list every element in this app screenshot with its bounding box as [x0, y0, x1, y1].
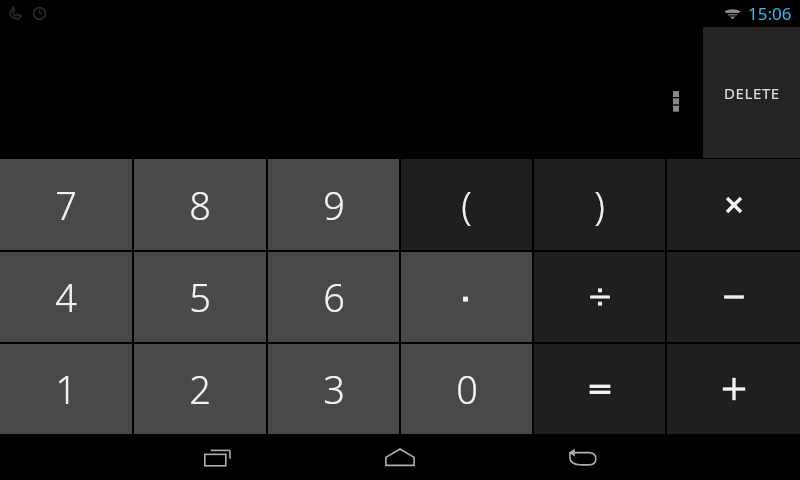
button[interactable]: 4: [0, 252, 132, 342]
staticText: 15:06: [748, 2, 792, 25]
button[interactable]: Home: [369, 435, 431, 479]
staticText: 5: [189, 271, 211, 323]
button[interactable]: Multiply: [667, 159, 800, 250]
button[interactable]: 1: [0, 344, 132, 434]
staticText: DELETE: [724, 83, 780, 103]
button[interactable]: 0: [401, 344, 532, 434]
button[interactable]: DELETE: [703, 27, 800, 158]
button[interactable]: (: [401, 159, 532, 250]
staticText: 9: [323, 179, 345, 231]
button[interactable]: 8: [134, 159, 266, 250]
button[interactable]: Equals: [534, 344, 665, 434]
button[interactable]: 9: [268, 159, 399, 250]
staticText: (: [461, 179, 472, 231]
staticText: 6: [323, 271, 345, 323]
staticText: 7: [55, 179, 77, 231]
button[interactable]: Back: [551, 435, 613, 479]
staticText: ): [594, 179, 605, 231]
button[interactable]: More options: [660, 78, 692, 126]
staticText: 4: [55, 271, 77, 323]
button[interactable]: Decimal point: [401, 252, 532, 342]
staticText: 8: [189, 179, 211, 231]
button[interactable]: 6: [268, 252, 399, 342]
button[interactable]: ): [534, 159, 665, 250]
button[interactable]: 3: [268, 344, 399, 434]
button[interactable]: Plus: [667, 344, 800, 434]
button[interactable]: 2: [134, 344, 266, 434]
staticText: 0: [456, 363, 478, 415]
staticText: 2: [189, 363, 211, 415]
button[interactable]: Divide: [534, 252, 665, 342]
staticText: 3: [323, 363, 345, 415]
button[interactable]: Minus: [667, 252, 800, 342]
button[interactable]: 5: [134, 252, 266, 342]
button[interactable]: Recent apps: [187, 435, 249, 479]
button[interactable]: 7: [0, 159, 132, 250]
staticText: 1: [55, 363, 77, 415]
